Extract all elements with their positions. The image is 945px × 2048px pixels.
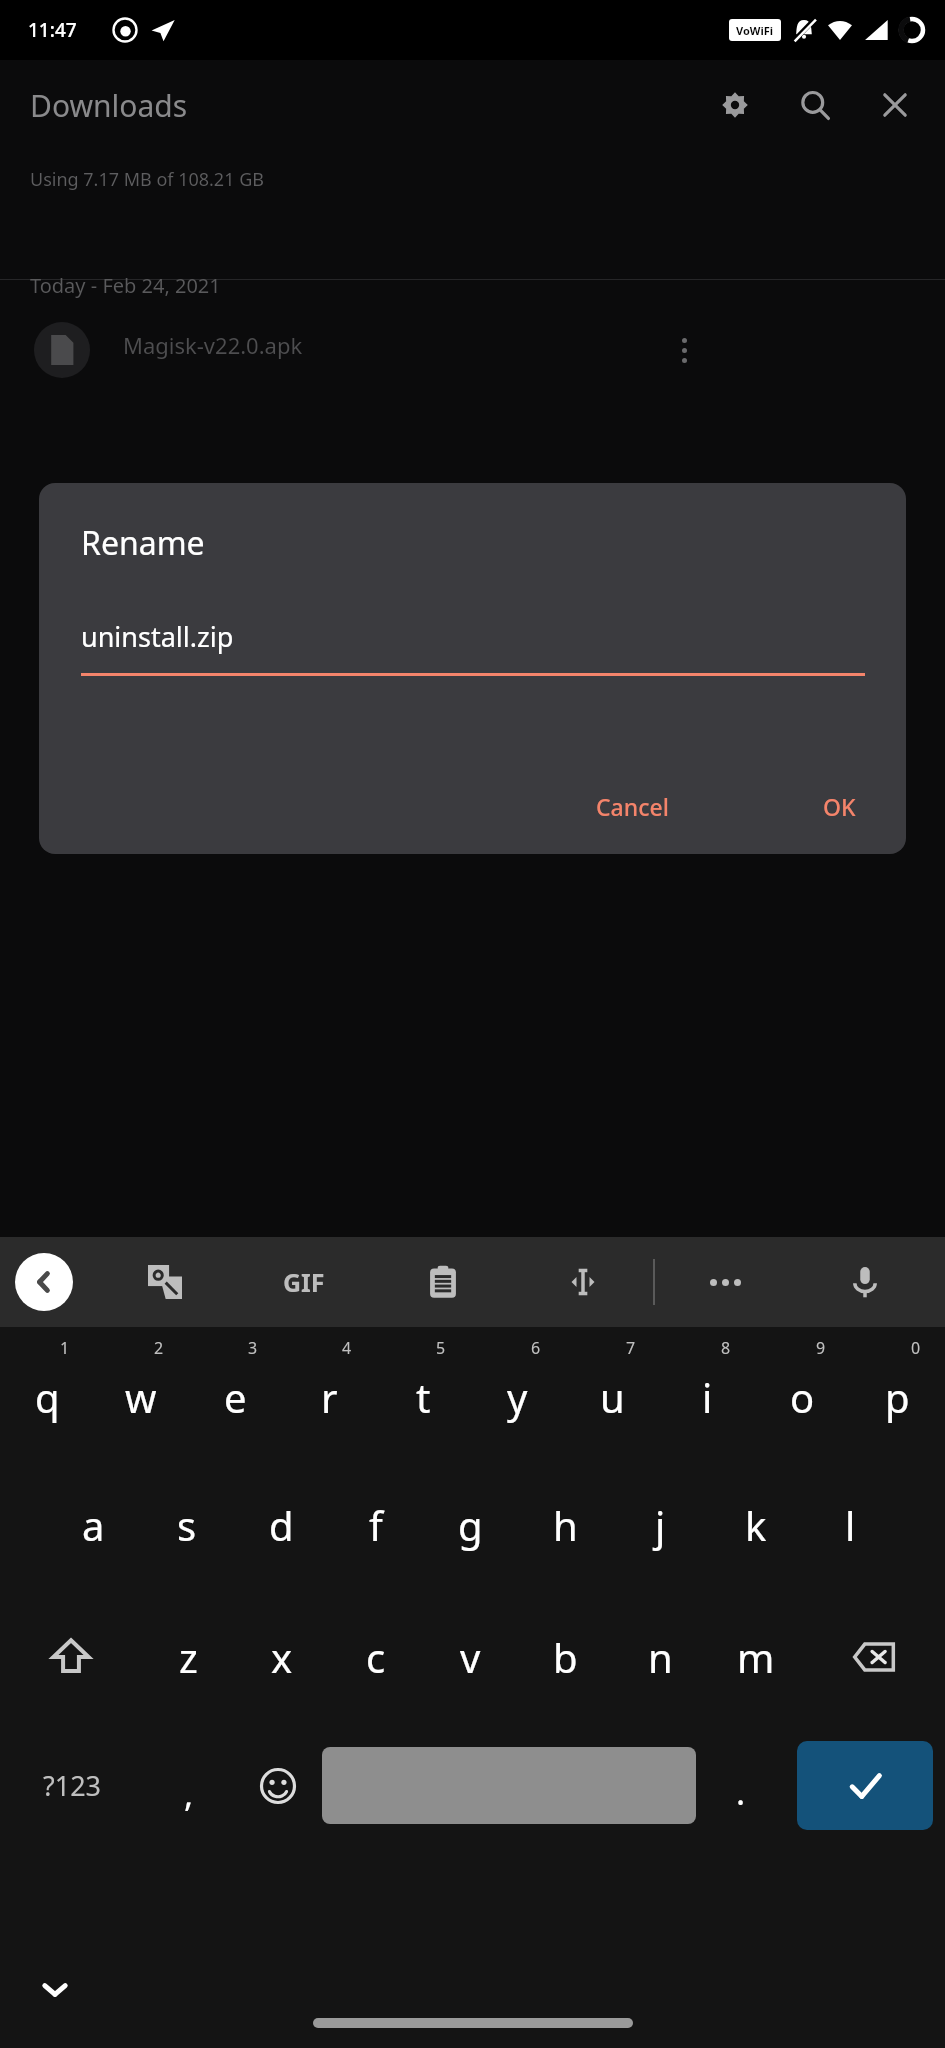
button[interactable]: 4 <box>282 1327 376 1459</box>
staticText: Cancel <box>596 791 669 822</box>
staticText: 3 <box>248 1337 258 1359</box>
staticText: 9 <box>816 1337 826 1359</box>
button[interactable]: Settings <box>711 81 759 129</box>
staticText: Magisk-v22.0.apk <box>123 330 303 360</box>
button[interactable]: 0 <box>850 1327 945 1459</box>
staticText: m <box>737 1630 775 1684</box>
button[interactable]: z <box>141 1591 235 1723</box>
staticText: 7 <box>626 1337 636 1359</box>
staticText: e <box>224 1370 247 1424</box>
button[interactable]: m <box>708 1591 803 1723</box>
staticText: Today - Feb 24, 2021 <box>30 272 221 299</box>
button[interactable]: 2 <box>94 1327 188 1459</box>
staticText: Downloads <box>30 85 188 126</box>
staticText: v <box>460 1630 481 1684</box>
staticText: 2 <box>154 1337 164 1359</box>
staticText: s <box>177 1498 197 1552</box>
button[interactable]: Text editing <box>560 1259 606 1305</box>
staticText: p <box>885 1370 910 1424</box>
staticText: . <box>736 1769 746 1815</box>
staticText: z <box>179 1630 198 1684</box>
button[interactable]: GIF <box>277 1259 331 1305</box>
button[interactable]: 6 <box>470 1327 565 1459</box>
button[interactable]: g <box>423 1459 518 1591</box>
button[interactable]: OK <box>801 777 878 836</box>
button[interactable]: . <box>696 1723 785 1848</box>
button[interactable]: Enter <box>797 1741 933 1830</box>
staticText: x <box>271 1630 293 1684</box>
button[interactable]: v <box>423 1591 518 1723</box>
staticText: r <box>321 1370 338 1424</box>
staticText: uninstall.zip <box>81 618 234 655</box>
staticText: a <box>82 1498 105 1552</box>
button[interactable]: Search <box>791 81 839 129</box>
button[interactable]: Voice input <box>842 1259 888 1305</box>
staticText: Rename <box>81 521 205 565</box>
button[interactable]: x <box>235 1591 329 1723</box>
button[interactable]: 8 <box>660 1327 755 1459</box>
staticText: 8 <box>721 1337 731 1359</box>
staticText: t <box>416 1370 431 1424</box>
staticText: OK <box>823 791 856 822</box>
staticText: 4 <box>342 1337 352 1359</box>
staticText: , <box>184 1771 194 1817</box>
staticText: w <box>125 1370 157 1424</box>
button[interactable]: Space <box>322 1747 696 1824</box>
staticText: j <box>655 1498 666 1552</box>
button[interactable]: c <box>329 1591 423 1723</box>
staticText: c <box>366 1630 386 1684</box>
staticText: k <box>745 1498 767 1552</box>
staticText: b <box>553 1630 578 1684</box>
button[interactable]: ?123 <box>0 1723 144 1848</box>
staticText: o <box>790 1370 815 1424</box>
button[interactable]: 3 <box>188 1327 282 1459</box>
staticText: h <box>553 1498 578 1552</box>
button[interactable]: 9 <box>755 1327 850 1459</box>
button[interactable]: j <box>613 1459 708 1591</box>
staticText: d <box>269 1498 294 1552</box>
button[interactable]: Cancel <box>574 777 691 836</box>
staticText: i <box>702 1370 713 1424</box>
button[interactable]: d <box>234 1459 328 1591</box>
staticText: 11:47 <box>28 17 77 43</box>
button[interactable]: Backspace <box>803 1591 945 1723</box>
button[interactable]: n <box>613 1591 708 1723</box>
staticText: q <box>35 1370 60 1424</box>
button[interactable]: h <box>518 1459 613 1591</box>
staticText: g <box>458 1498 483 1552</box>
button[interactable]: s <box>140 1459 234 1591</box>
button[interactable]: a <box>46 1459 140 1591</box>
button[interactable]: 5 <box>376 1327 470 1459</box>
staticText: 6 <box>531 1337 541 1359</box>
staticText: 5 <box>436 1337 446 1359</box>
other: Hide keyboard <box>38 1972 72 2006</box>
staticText: n <box>648 1630 673 1684</box>
button[interactable]: Clipboard <box>420 1259 466 1305</box>
button[interactable]: Emoji <box>233 1723 322 1848</box>
staticText: y <box>507 1370 528 1424</box>
staticText: 1 <box>60 1337 70 1359</box>
button[interactable]: More options <box>664 330 704 370</box>
button[interactable]: f <box>328 1459 423 1591</box>
staticText: 0 <box>911 1337 921 1359</box>
staticText: GIF <box>283 1265 325 1299</box>
staticText: u <box>600 1370 625 1424</box>
button[interactable]: Back <box>15 1253 73 1311</box>
button[interactable]: Shift <box>0 1591 141 1723</box>
button[interactable]: 7 <box>565 1327 660 1459</box>
button[interactable]: , <box>144 1723 233 1848</box>
button[interactable]: l <box>803 1459 898 1591</box>
staticText: f <box>369 1498 383 1552</box>
staticText: l <box>845 1498 856 1552</box>
staticText: ?123 <box>43 1767 102 1804</box>
button[interactable]: k <box>708 1459 803 1591</box>
button[interactable]: 1 <box>0 1327 94 1459</box>
button[interactable]: More <box>702 1259 748 1305</box>
staticText: VoWiFi <box>736 23 774 38</box>
button[interactable]: Translate <box>142 1259 188 1305</box>
staticText: Using 7.17 MB of 108.21 GB <box>30 167 264 192</box>
button[interactable]: Close <box>871 81 919 129</box>
button[interactable]: b <box>518 1591 613 1723</box>
